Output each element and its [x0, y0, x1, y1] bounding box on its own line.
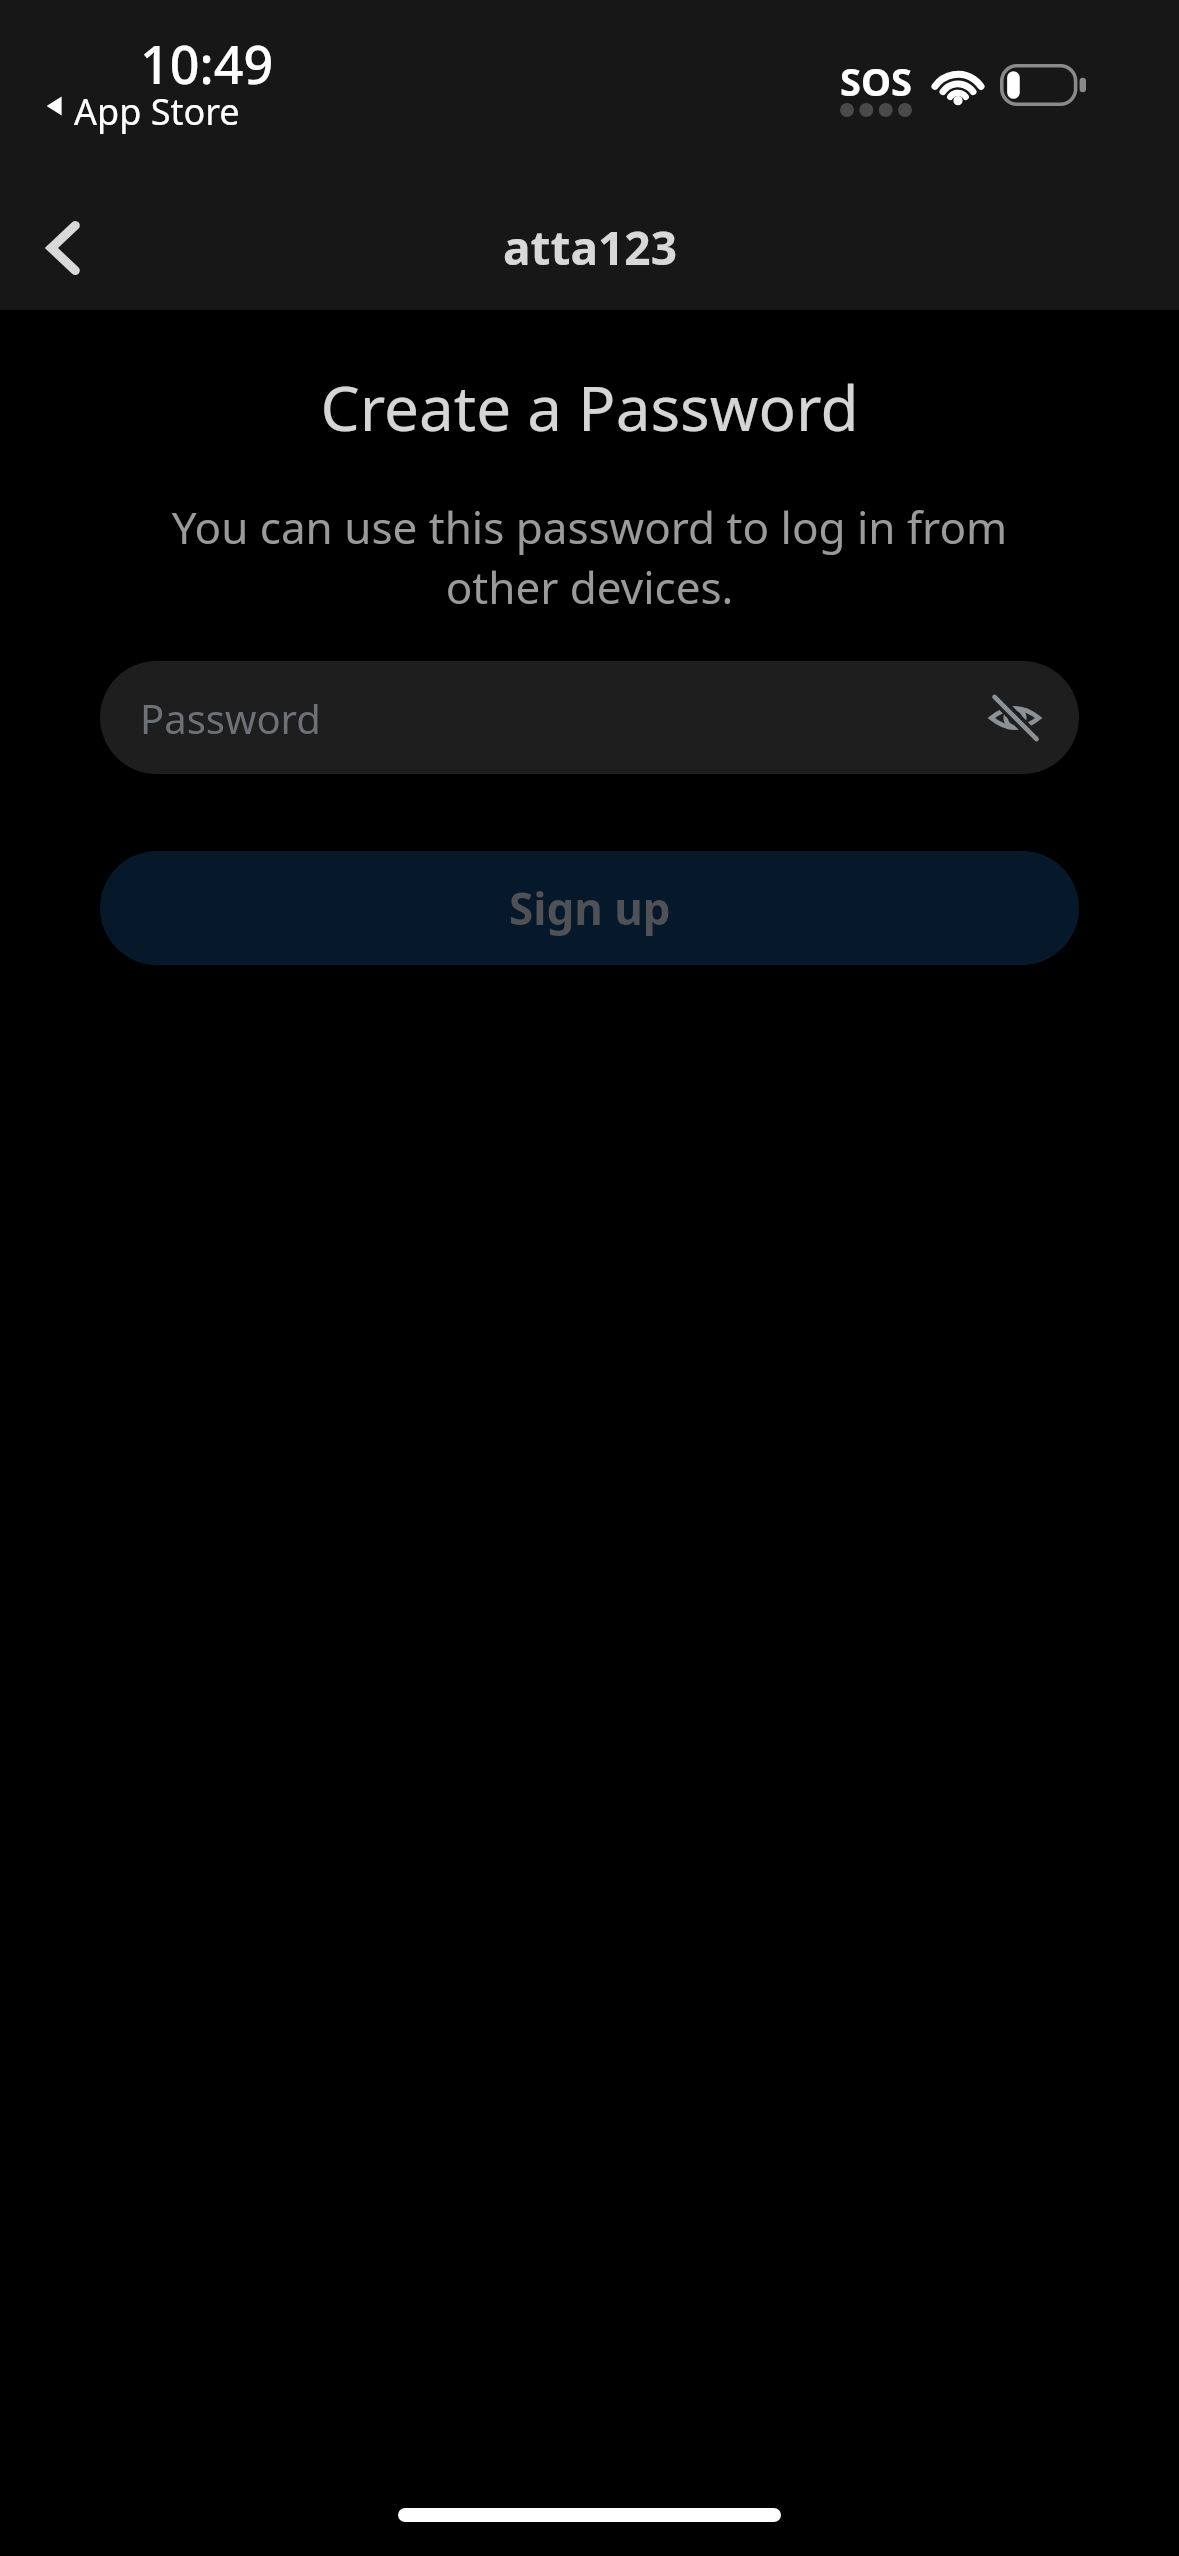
staticText: Password — [140, 691, 321, 745]
button[interactable]: Password — [100, 661, 1079, 774]
staticText: SOS — [840, 55, 912, 107]
staticText: You can use this password to log in from… — [110, 497, 1069, 617]
button[interactable]: App Store — [40, 86, 206, 135]
staticText: Create a Password — [320, 365, 859, 449]
button[interactable]: Sign up — [100, 851, 1079, 965]
staticText: atta123 — [503, 216, 677, 279]
button[interactable]: Show password — [973, 676, 1057, 760]
staticText: 10:49 — [140, 28, 274, 99]
button[interactable]: Back — [14, 199, 112, 297]
staticText: App Store — [74, 87, 240, 136]
staticText: Sign up — [509, 878, 671, 938]
